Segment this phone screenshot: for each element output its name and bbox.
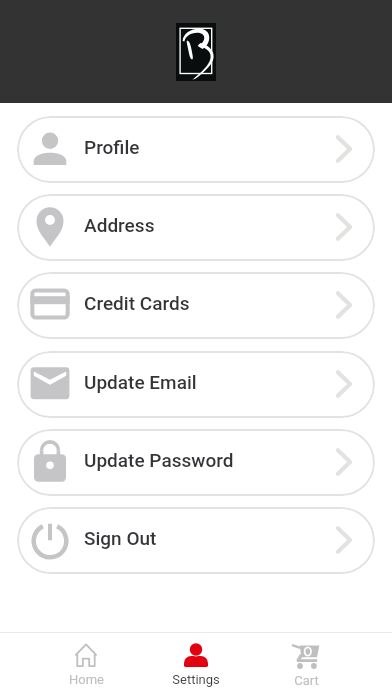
button[interactable]: Settings — [141, 643, 251, 687]
staticText: Profile — [84, 136, 140, 158]
staticText: Settings — [172, 672, 220, 687]
button[interactable]: Credit Cards — [17, 272, 375, 339]
staticText: Update Password — [84, 449, 234, 471]
button[interactable]: Profile — [17, 116, 375, 183]
button[interactable]: Update Password — [17, 429, 375, 496]
staticText: Address — [84, 214, 155, 236]
staticText: Update Email — [84, 371, 197, 393]
button[interactable]: Home — [31, 643, 141, 687]
button[interactable]: Update Email — [17, 351, 375, 418]
staticText: Sign Out — [84, 527, 157, 549]
button[interactable]: Address — [17, 194, 375, 261]
button[interactable]: Sign Out — [17, 507, 375, 574]
staticText: Cart — [294, 673, 319, 688]
staticText: Credit Cards — [84, 292, 190, 314]
staticText: Home — [69, 672, 104, 687]
button[interactable]: Cart — [251, 642, 361, 688]
